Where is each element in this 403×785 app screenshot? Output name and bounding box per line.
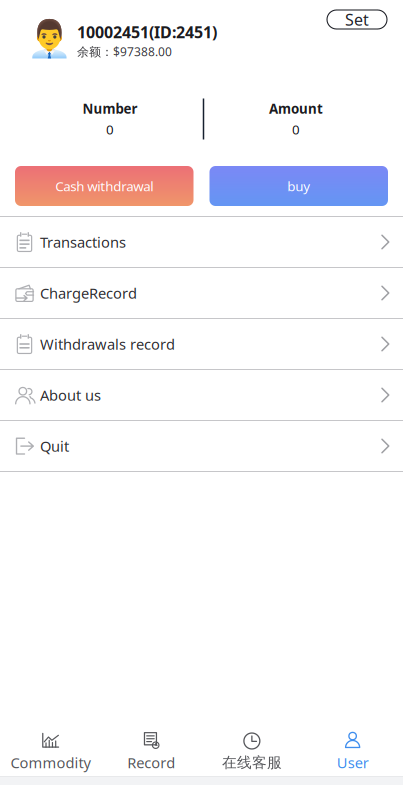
staticText: 10002451(ID:2451)	[77, 21, 217, 43]
staticText: Record	[127, 753, 175, 772]
staticText: Amount	[269, 100, 323, 117]
button[interactable]: Withdrawals record	[0, 319, 403, 370]
staticText: 0	[106, 120, 114, 138]
button[interactable]: ChargeRecord	[0, 268, 403, 319]
button[interactable]: Cash withdrawal	[15, 166, 193, 206]
staticText: 👨‍💼	[27, 18, 72, 59]
staticText: 在线客服	[222, 753, 282, 771]
button[interactable]: Record	[101, 727, 202, 776]
staticText: Transactions	[40, 232, 126, 252]
staticText: Cash withdrawal	[55, 177, 153, 195]
staticText: User	[337, 753, 369, 772]
button[interactable]: Set	[327, 10, 387, 29]
button[interactable]: About us	[0, 370, 403, 421]
staticText: About us	[40, 385, 101, 405]
staticText: 0	[292, 120, 300, 138]
staticText: 余额：$97388.00	[77, 44, 172, 60]
button[interactable]: 在线客服	[201, 727, 302, 776]
staticText: Quit	[40, 436, 69, 456]
staticText: Number	[82, 100, 137, 117]
staticText: Commodity	[10, 753, 90, 772]
button[interactable]: Commodity	[0, 727, 101, 776]
button[interactable]: Transactions	[0, 217, 403, 268]
button[interactable]: User	[302, 727, 403, 776]
staticText: Set	[345, 9, 369, 30]
staticText: Withdrawals record	[40, 334, 175, 354]
button[interactable]: Quit	[0, 421, 403, 472]
staticText: ChargeRecord	[40, 283, 137, 303]
button[interactable]: buy	[209, 166, 388, 206]
staticText: buy	[287, 177, 310, 195]
